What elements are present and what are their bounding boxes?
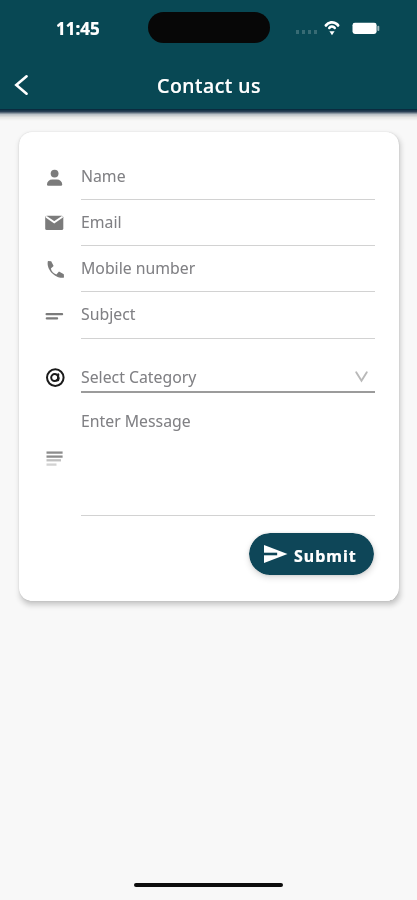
staticText: Name <box>81 165 126 187</box>
staticText: Subject <box>81 303 136 325</box>
button[interactable]: Submit <box>249 533 374 575</box>
staticText: Submit <box>294 545 357 567</box>
staticText: Select Category <box>81 366 197 388</box>
staticText: 11:45 <box>56 17 100 40</box>
staticText: Contact us <box>157 72 261 99</box>
button[interactable]: Back <box>0 62 46 108</box>
staticText: Mobile number <box>81 257 196 279</box>
staticText: Email <box>81 211 122 233</box>
staticText: Enter Message <box>81 410 191 432</box>
